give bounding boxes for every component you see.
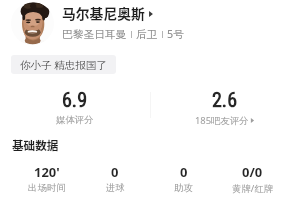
staticText: 助攻 bbox=[174, 182, 193, 194]
staticText: 黄牌/红牌 bbox=[232, 182, 274, 195]
staticText: 进球 bbox=[106, 182, 125, 194]
button[interactable]: 2.6 bbox=[150, 88, 300, 127]
staticText: 马尔基尼奥斯 bbox=[62, 3, 145, 23]
staticText: 后卫 bbox=[136, 28, 158, 42]
staticText: 基础数据 bbox=[12, 137, 59, 154]
staticText: 0/0 bbox=[242, 163, 263, 181]
staticText: 巴黎圣日耳曼 bbox=[62, 28, 127, 42]
staticText: 0 bbox=[111, 163, 119, 181]
button[interactable]: 6.9 bbox=[0, 88, 150, 126]
staticText: 120' bbox=[34, 163, 60, 181]
staticText: 你小子 精忠报国了 bbox=[20, 58, 107, 72]
button[interactable]: 你小子 精忠报国了 bbox=[11, 55, 116, 74]
staticText: 6.9 bbox=[62, 88, 88, 111]
staticText: 0 bbox=[180, 163, 188, 181]
button[interactable]: 马尔基尼奥斯 bbox=[11, 2, 300, 45]
staticText: 出场时间 bbox=[28, 182, 66, 194]
staticText: 185吧友评分 bbox=[195, 114, 249, 127]
staticText: 5号 bbox=[167, 27, 184, 42]
staticText: 2.6 bbox=[212, 88, 238, 111]
staticText: 媒体评分 bbox=[56, 114, 94, 126]
